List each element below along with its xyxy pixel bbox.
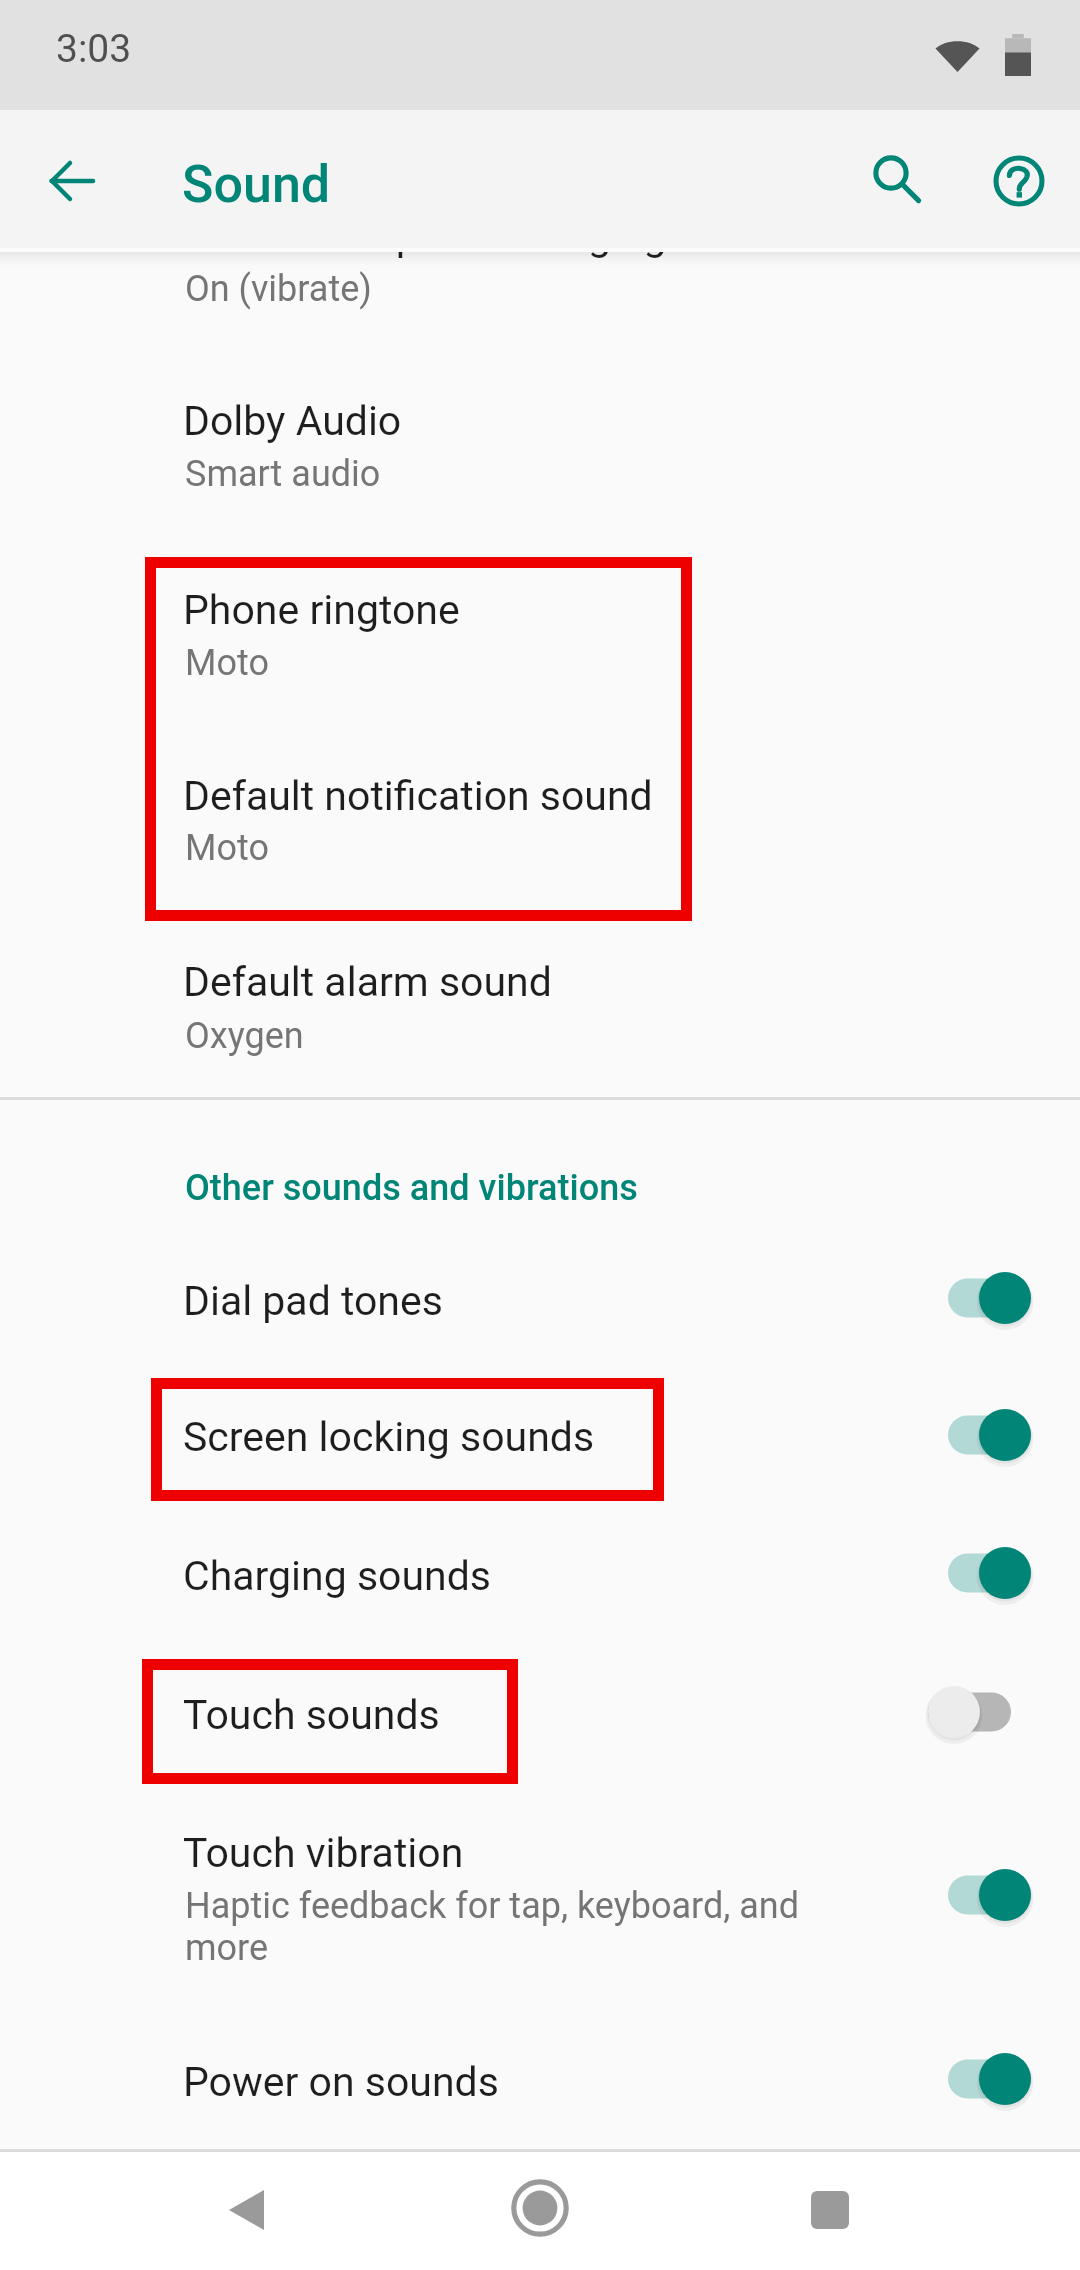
button[interactable] bbox=[0, 252, 1080, 310]
button[interactable]: Back bbox=[186, 2151, 306, 2269]
button[interactable]: Help bbox=[973, 133, 1065, 225]
button[interactable]: Charging sounds bbox=[0, 1491, 1080, 1627]
button[interactable]: Navigate up bbox=[26, 133, 118, 225]
button[interactable] bbox=[0, 686, 1080, 871]
button[interactable]: Power on sounds bbox=[0, 1996, 1080, 2134]
staticText: Haptic feedback for tap, keyboard, and m… bbox=[185, 1885, 800, 1969]
button[interactable] bbox=[0, 498, 1080, 686]
button[interactable]: Screen locking sounds bbox=[0, 1353, 1080, 1491]
staticText: Other sounds and vibrations bbox=[185, 1167, 638, 1209]
staticText: On (vibrate) bbox=[185, 268, 372, 310]
button[interactable]: Touch sounds bbox=[0, 1627, 1080, 1765]
button[interactable] bbox=[0, 871, 1080, 1061]
staticText: Smart audio bbox=[185, 453, 381, 495]
staticText: Moto bbox=[185, 642, 269, 684]
staticText: Charging sounds bbox=[183, 1552, 491, 1600]
button[interactable]: Recent apps bbox=[770, 2151, 890, 2269]
button[interactable]: Touch vibration bbox=[0, 1765, 1080, 1996]
staticText: 3:03 bbox=[56, 26, 132, 72]
staticText: Touch sounds bbox=[183, 1691, 440, 1739]
button[interactable] bbox=[0, 310, 1080, 498]
staticText: Oxygen bbox=[185, 1015, 304, 1057]
button[interactable]: Home bbox=[480, 2149, 600, 2267]
staticText: Shortcut to prevent ringing bbox=[183, 252, 667, 260]
staticText: Power on sounds bbox=[183, 2058, 499, 2106]
staticText: Default notification sound bbox=[183, 772, 653, 820]
button[interactable]: Search bbox=[851, 133, 943, 225]
staticText: Sound bbox=[182, 154, 331, 215]
staticText: Dolby Audio bbox=[183, 397, 402, 445]
staticText: Touch vibration bbox=[183, 1829, 464, 1877]
staticText: Phone ringtone bbox=[183, 586, 460, 634]
staticText: Moto bbox=[185, 827, 269, 869]
button[interactable]: Dial pad tones bbox=[0, 1215, 1080, 1353]
staticText: Dial pad tones bbox=[183, 1277, 443, 1325]
staticText: Default alarm sound bbox=[183, 958, 552, 1006]
staticText: Screen locking sounds bbox=[183, 1413, 595, 1461]
